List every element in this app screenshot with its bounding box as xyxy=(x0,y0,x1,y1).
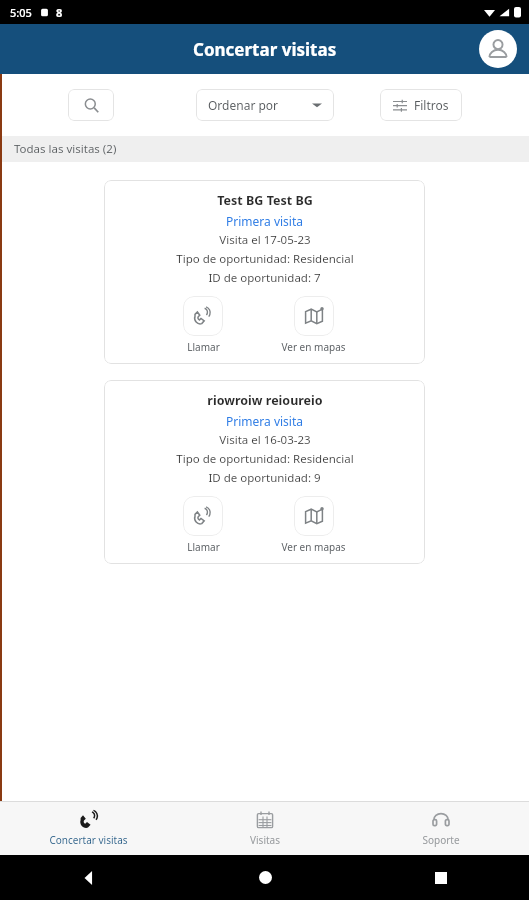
staticText: Filtros xyxy=(414,97,449,113)
staticText: Visita el 17-05-23 xyxy=(219,232,311,248)
staticText: Test BG Test BG xyxy=(217,192,313,209)
button[interactable]: Soporte xyxy=(353,802,529,855)
button[interactable]: Llamar xyxy=(183,296,223,354)
button[interactable]: Primera visita xyxy=(226,413,303,429)
staticText: Tipo de oportunidad: Residencial xyxy=(176,251,354,267)
button[interactable]: Ver en mapas xyxy=(281,296,346,354)
button[interactable]: riowroiw reioureio xyxy=(104,380,425,564)
staticText: Soporte xyxy=(422,833,460,847)
staticText: ID de oportunidad: 9 xyxy=(208,470,321,486)
button[interactable]: Llamar xyxy=(183,496,223,554)
staticText: Ver en mapas xyxy=(281,540,346,554)
staticText: Llamar xyxy=(187,340,220,354)
button[interactable]: Test BG Test BG xyxy=(104,180,425,364)
button[interactable]: Ver en mapas xyxy=(281,496,346,554)
staticText: Tipo de oportunidad: Residencial xyxy=(176,451,354,467)
staticText: riowroiw reioureio xyxy=(207,392,323,409)
button[interactable]: Ordenar por xyxy=(196,89,334,121)
button[interactable]: Filtros xyxy=(380,89,462,121)
staticText: Visitas xyxy=(250,833,280,847)
staticText: Concertar visitas xyxy=(49,833,128,847)
staticText: Concertar visitas xyxy=(193,38,337,61)
button[interactable]: Primera visita xyxy=(226,213,303,229)
staticText: 5:05 xyxy=(10,5,32,20)
staticText: Visita el 16-03-23 xyxy=(219,432,311,448)
button[interactable]: Perfil xyxy=(479,30,517,68)
button[interactable]: Concertar visitas xyxy=(0,802,177,855)
staticText: Todas las visitas (2) xyxy=(14,141,117,157)
staticText: Llamar xyxy=(187,540,220,554)
staticText: 8 xyxy=(56,5,63,20)
staticText: ID de oportunidad: 7 xyxy=(208,270,321,286)
staticText: Ordenar por xyxy=(208,97,279,113)
staticText: Ver en mapas xyxy=(281,340,346,354)
button[interactable]: Visitas xyxy=(177,802,353,855)
button[interactable]: Buscar xyxy=(68,89,114,121)
